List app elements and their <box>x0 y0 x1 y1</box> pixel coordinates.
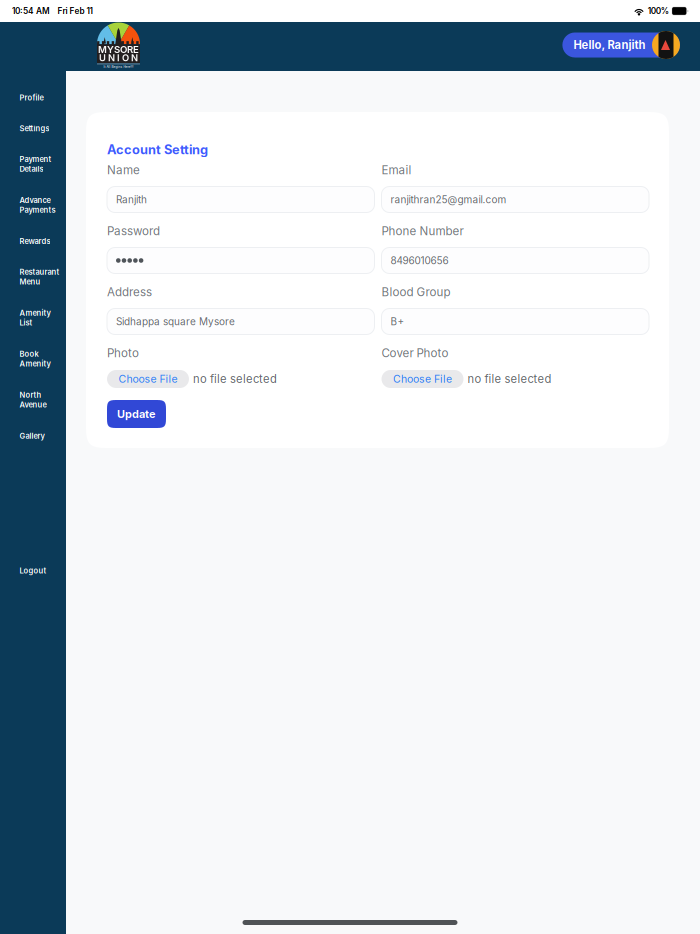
staticText: Payments <box>19 205 55 215</box>
staticText: Fri Feb 11 <box>57 6 92 16</box>
staticText: Cover Photo <box>381 346 448 360</box>
staticText: Phone Number <box>381 224 463 238</box>
staticText: Details <box>19 164 43 174</box>
button[interactable]: Amenity <box>0 298 66 339</box>
button[interactable]: Update <box>107 400 166 428</box>
staticText: Address <box>107 285 152 299</box>
button[interactable]: Gallery <box>0 421 66 452</box>
button[interactable]: Restaurant <box>0 257 66 298</box>
staticText: Logout <box>19 566 46 575</box>
staticText: Update <box>117 407 156 421</box>
staticText: no file selected <box>193 372 277 386</box>
staticText: List <box>19 318 32 327</box>
staticText: Hello, Ranjith <box>573 38 645 52</box>
staticText: Blood Group <box>381 285 450 299</box>
button[interactable]: Profile <box>0 83 66 114</box>
staticText: It All Begins Here!!! <box>103 65 133 69</box>
staticText: Sidhappa square Mysore <box>116 315 235 328</box>
staticText: Amenity <box>19 359 50 368</box>
button[interactable]: Rewards <box>0 226 66 257</box>
button[interactable]: Hello, Ranjith <box>562 31 680 59</box>
button[interactable]: Settings <box>0 114 66 144</box>
staticText: 8496010656 <box>390 254 448 267</box>
staticText: Name <box>107 163 140 177</box>
staticText: Choose File <box>118 373 177 385</box>
staticText: MYSORE <box>98 44 139 55</box>
staticText: U N I O N <box>99 52 138 63</box>
staticText: 10:54 AM <box>12 6 50 16</box>
staticText: no file selected <box>467 372 551 386</box>
staticText: B+ <box>390 315 404 328</box>
staticText: Ranjith <box>116 193 147 206</box>
staticText: Menu <box>19 277 40 286</box>
staticText: Rewards <box>19 237 50 246</box>
staticText: Profile <box>19 93 43 102</box>
staticText: Photo <box>107 346 139 360</box>
staticText: 100% <box>648 6 669 16</box>
staticText: Amenity <box>19 308 50 318</box>
button[interactable]: North <box>0 380 66 421</box>
staticText: Gallery <box>19 431 44 441</box>
button[interactable]: Book <box>0 339 66 380</box>
staticText: Book <box>19 349 38 359</box>
staticText: North <box>19 390 41 400</box>
staticText: Choose File <box>393 373 452 385</box>
staticText: Password <box>107 224 160 238</box>
staticText: Restaurant <box>19 267 59 277</box>
button[interactable]: Choose File <box>107 370 189 388</box>
staticText: Email <box>381 163 411 177</box>
staticText: Account Setting <box>107 142 208 157</box>
staticText: Advance <box>19 196 50 205</box>
staticText: ranjithran25@gmail.com <box>390 193 506 206</box>
button[interactable]: Payment <box>0 144 66 185</box>
staticText: Payment <box>19 155 51 164</box>
staticText: Avenue <box>19 400 46 409</box>
button[interactable]: Choose File <box>381 370 463 388</box>
staticText: Settings <box>19 124 49 133</box>
button[interactable]: Advance <box>0 185 66 226</box>
button[interactable]: Logout <box>0 556 66 586</box>
